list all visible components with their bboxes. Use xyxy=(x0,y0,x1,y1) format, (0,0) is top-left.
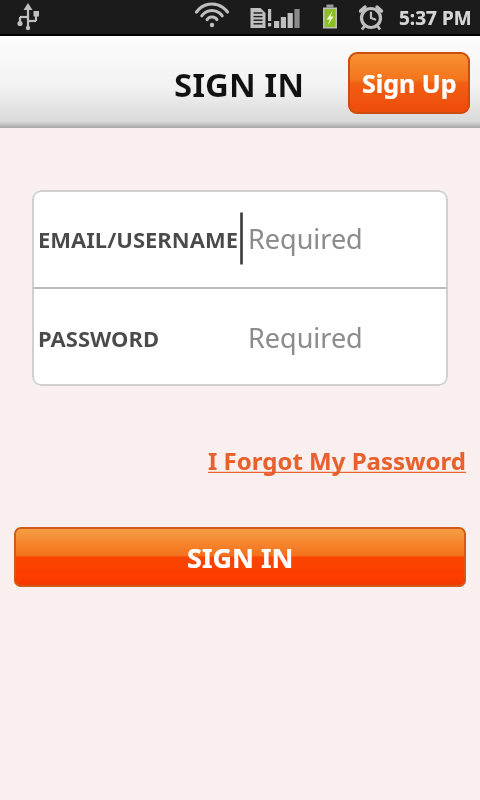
staticText: PASSWORD xyxy=(38,323,160,353)
staticText: SIGN IN xyxy=(187,539,294,576)
staticText: 5:37 PM xyxy=(399,5,472,31)
staticText: Required xyxy=(248,220,363,257)
staticText: SIGN IN xyxy=(174,62,304,107)
button[interactable]: Sign Up xyxy=(348,52,470,114)
button[interactable]: SIGN IN xyxy=(14,527,466,587)
button[interactable]: PASSWORD xyxy=(32,289,448,386)
staticText: EMAIL/USERNAME xyxy=(38,224,238,254)
staticText: Required xyxy=(248,319,363,356)
button[interactable]: EMAIL/USERNAME xyxy=(32,190,448,287)
staticText: Sign Up xyxy=(362,66,457,100)
button[interactable]: I Forgot My Password xyxy=(208,444,466,477)
staticText: I Forgot My Password xyxy=(208,444,466,477)
